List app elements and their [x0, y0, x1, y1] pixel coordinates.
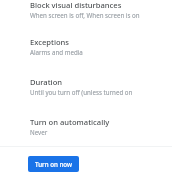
staticText: Turn on now: [35, 160, 72, 168]
button[interactable]: Turn on now: [28, 156, 79, 172]
staticText: Turn on automatically: [30, 117, 110, 127]
staticText: Duration: [30, 77, 63, 87]
staticText: Never: [30, 128, 48, 136]
button[interactable]: Exceptions: [0, 19, 172, 56]
staticText: Block visual disturbances: [30, 0, 122, 10]
button[interactable]: Turn on automatically: [0, 96, 172, 136]
staticText: Exceptions: [30, 37, 70, 47]
staticText: Alarms and media: [30, 48, 83, 56]
staticText: When screen is off, When screen is on: [30, 11, 140, 19]
button[interactable]: Duration: [0, 56, 172, 96]
staticText: Until you turn off (unless turned on aut…: [30, 88, 168, 96]
button[interactable]: Block visual disturbances: [0, 0, 172, 19]
